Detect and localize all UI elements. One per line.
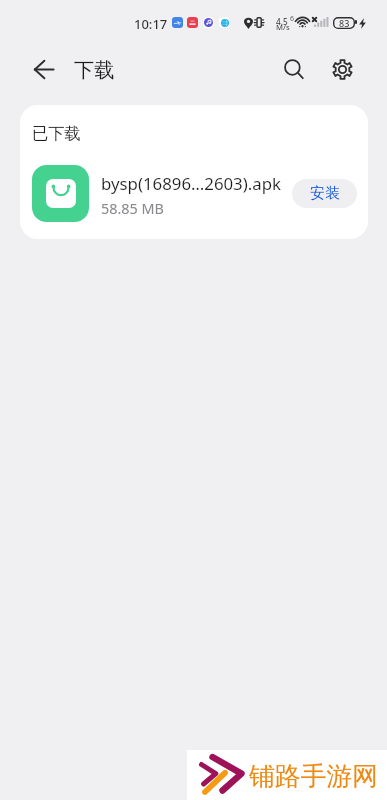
staticText: 已下载 — [32, 123, 81, 144]
button[interactable]: bysp(16896…2603).apk — [20, 165, 368, 238]
button[interactable]: Search — [271, 46, 317, 92]
staticText: 下载 — [74, 58, 115, 83]
staticText: 6 — [290, 14, 295, 24]
staticText: bysp(16896…2603).apk — [101, 172, 281, 195]
button[interactable]: Settings — [319, 46, 365, 92]
staticText: 10:17 — [134, 15, 168, 33]
staticText: 4.5 — [276, 16, 288, 27]
staticText: 铺路手游网 — [249, 760, 378, 793]
staticText: 83 — [339, 17, 350, 29]
staticText: M/s — [276, 22, 290, 32]
staticText: 安装 — [310, 184, 340, 203]
button[interactable]: 安装 — [292, 179, 357, 208]
staticText: 58.85 MB — [101, 199, 164, 219]
button[interactable]: Back — [21, 46, 67, 92]
